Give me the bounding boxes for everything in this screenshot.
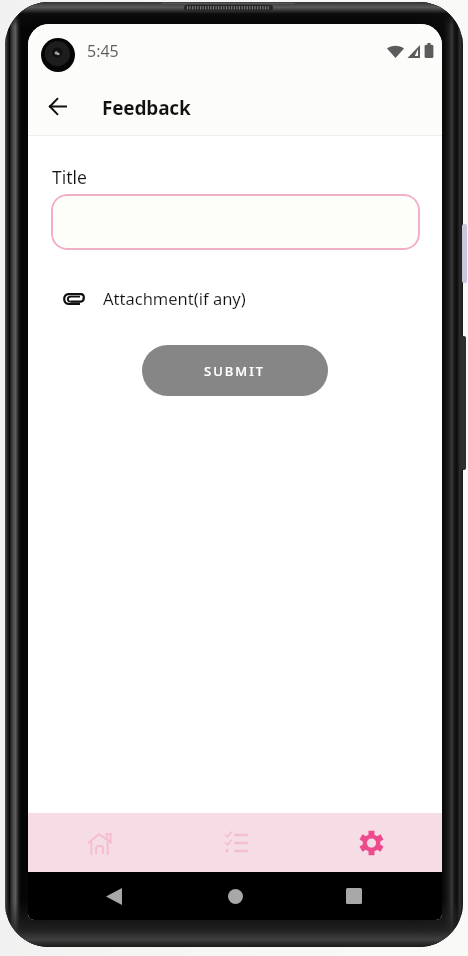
- button[interactable]: Back: [90, 872, 138, 920]
- button[interactable]: Home: [211, 872, 259, 920]
- staticText: 5:45: [87, 40, 119, 62]
- button[interactable]: Settings: [347, 819, 395, 867]
- button[interactable]: Back: [36, 84, 80, 128]
- button[interactable]: SUBMIT: [142, 345, 328, 396]
- button[interactable]: [51, 194, 420, 250]
- staticText: Feedback: [102, 95, 191, 121]
- staticText: Title: [52, 165, 87, 189]
- staticText: Attachment(if any): [103, 287, 246, 309]
- button[interactable]: Home: [76, 819, 124, 867]
- staticText: SUBMIT: [204, 362, 266, 380]
- button[interactable]: Attachment(if any): [64, 288, 246, 310]
- button[interactable]: Recent apps: [330, 872, 378, 920]
- button[interactable]: Tasks: [212, 819, 260, 867]
